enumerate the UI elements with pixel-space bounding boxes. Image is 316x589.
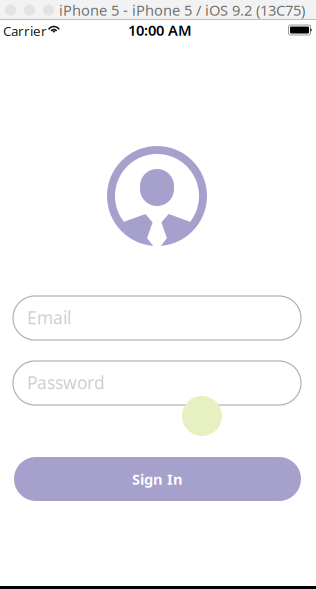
staticText: Sign In — [132, 469, 183, 489]
button[interactable]: Sign In — [14, 457, 301, 501]
staticText: Password — [27, 371, 105, 394]
staticText: Carrier — [3, 22, 47, 40]
staticText: 10:00 AM — [128, 20, 192, 40]
staticText: iPhone 5 - iPhone 5 / iOS 9.2 (13C75) — [59, 0, 305, 20]
staticText: Email — [27, 306, 71, 329]
